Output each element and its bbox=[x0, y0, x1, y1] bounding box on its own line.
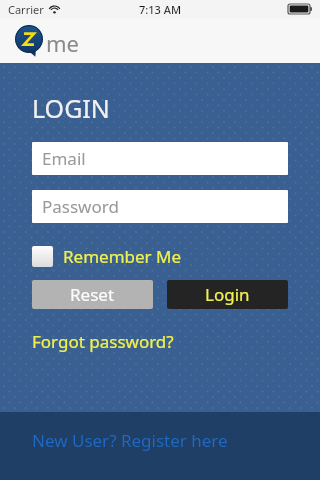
staticText: Password bbox=[42, 195, 119, 218]
button[interactable]: Password bbox=[32, 190, 288, 223]
staticText: LOGIN bbox=[32, 91, 110, 125]
button[interactable]: Remember Me bbox=[32, 244, 182, 268]
staticText: Remember Me bbox=[63, 245, 182, 268]
button[interactable]: Reset bbox=[32, 280, 153, 309]
other: Battery full bbox=[288, 4, 312, 14]
staticText: Email bbox=[42, 147, 86, 170]
button[interactable]: Zme home bbox=[13, 25, 79, 57]
staticText: Login bbox=[205, 283, 250, 306]
button[interactable]: Email bbox=[32, 142, 288, 175]
staticText: 7:13 AM bbox=[139, 2, 182, 17]
staticText: Reset bbox=[70, 283, 115, 306]
button[interactable]: Login bbox=[167, 280, 288, 309]
other: Wi-Fi signal bbox=[49, 4, 60, 15]
button[interactable]: New User? Register here bbox=[32, 429, 228, 452]
staticText: me bbox=[46, 28, 79, 58]
button[interactable]: Forgot password? bbox=[32, 330, 174, 353]
staticText: Carrier bbox=[8, 2, 44, 17]
